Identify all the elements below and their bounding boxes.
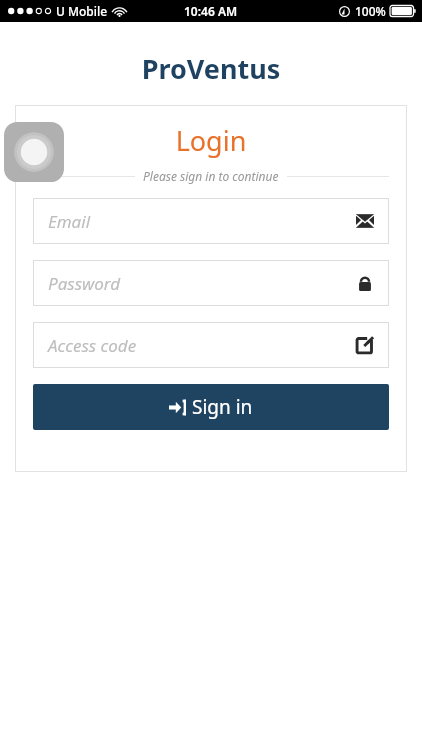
staticText: 10:46 AM (184, 3, 238, 19)
button[interactable]: Sign in (33, 384, 389, 430)
staticText: 100% (355, 3, 386, 19)
button[interactable]: Password (33, 260, 389, 306)
staticText: ProVentus (0, 50, 422, 87)
staticText: Password (48, 272, 356, 295)
staticText: Access code (48, 334, 356, 357)
button[interactable]: Email (33, 198, 389, 244)
staticText: Sign in (192, 394, 253, 420)
staticText: Login (33, 122, 389, 159)
button[interactable]: Access code (33, 322, 389, 368)
staticText: U Mobile (56, 3, 108, 19)
staticText: Email (48, 210, 356, 233)
other: Logo (4, 122, 64, 182)
staticText: Please sign in to continue (143, 168, 279, 184)
